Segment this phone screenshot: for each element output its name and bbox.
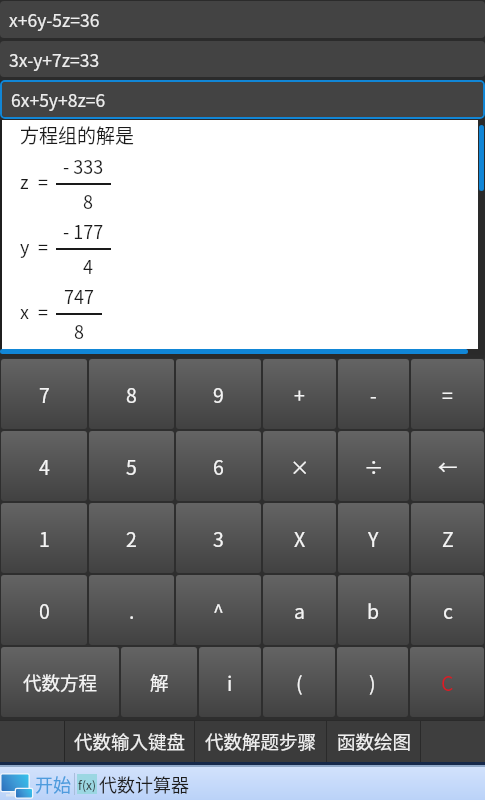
staticText: - 333 xyxy=(38,153,128,179)
button[interactable]: 0 xyxy=(1,575,87,645)
button[interactable]: × xyxy=(263,431,336,501)
button[interactable]: X xyxy=(263,503,336,573)
button[interactable]: ) xyxy=(337,647,408,717)
staticText: 747 xyxy=(34,283,124,309)
staticText: ^ xyxy=(213,596,224,624)
button[interactable]: 代数方程 xyxy=(1,647,119,717)
staticText: C xyxy=(441,668,454,696)
button[interactable]: a xyxy=(263,575,336,645)
staticText: + xyxy=(294,380,305,408)
button[interactable]: 3 xyxy=(176,503,261,573)
staticText: x+6y-5z=36 xyxy=(9,7,100,32)
button[interactable]: + xyxy=(263,359,336,429)
button[interactable]: 1 xyxy=(1,503,87,573)
staticText: ) xyxy=(369,668,376,696)
staticText: Z xyxy=(442,524,454,552)
button[interactable]: 6x+5y+8z=6 xyxy=(2,82,483,117)
staticText: X xyxy=(294,524,306,552)
button[interactable]: C xyxy=(410,647,484,717)
staticText: 2 xyxy=(126,524,137,552)
staticText: 9 xyxy=(213,380,224,408)
staticText: 8 xyxy=(43,188,133,214)
staticText: 代数计算器 xyxy=(99,771,189,797)
button[interactable]: ÷ xyxy=(338,431,409,501)
staticText: ÷ xyxy=(364,452,384,480)
other: Start xyxy=(0,769,34,799)
button[interactable]: i xyxy=(199,647,261,717)
staticText: 开始 xyxy=(35,771,71,797)
staticText: 函数绘图 xyxy=(337,728,412,755)
staticText: 6 xyxy=(213,452,224,480)
button[interactable]: 代数解题步骤 xyxy=(195,720,327,762)
staticText: 代数解题步骤 xyxy=(205,728,317,755)
staticText: 6x+5y+8z=6 xyxy=(11,87,106,112)
staticText: = xyxy=(38,168,48,194)
button[interactable]: 9 xyxy=(176,359,261,429)
button[interactable]: ^ xyxy=(176,575,261,645)
staticText: 解 xyxy=(150,669,169,696)
button[interactable]: 8 xyxy=(89,359,174,429)
staticText: = xyxy=(442,380,453,408)
button[interactable]: ( xyxy=(263,647,335,717)
staticText: 5 xyxy=(126,452,137,480)
button[interactable]: ← xyxy=(411,431,484,501)
staticText: 1 xyxy=(39,524,50,552)
staticText: 方程组的解是 xyxy=(20,121,135,149)
staticText: i xyxy=(227,668,233,696)
staticText: 4 xyxy=(39,452,50,480)
staticText: y xyxy=(20,233,30,259)
staticText: × xyxy=(290,452,310,480)
button[interactable]: 7 xyxy=(1,359,87,429)
staticText: ← xyxy=(438,452,458,480)
button[interactable]: 代数输入键盘 xyxy=(65,720,195,762)
staticText: - 177 xyxy=(38,218,128,244)
staticText: a xyxy=(294,596,305,624)
button[interactable]: 3x-y+7z=33 xyxy=(0,41,485,77)
staticText: = xyxy=(38,298,48,324)
button[interactable]: - xyxy=(338,359,409,429)
staticText: - xyxy=(370,380,377,408)
staticText: b xyxy=(367,596,380,624)
staticText: 代数方程 xyxy=(23,669,98,696)
staticText: 8 xyxy=(126,380,137,408)
button[interactable]: Z xyxy=(411,503,484,573)
staticText: ( xyxy=(296,668,303,696)
staticText: c xyxy=(443,596,453,624)
staticText: 4 xyxy=(43,253,133,279)
staticText: 3x-y+7z=33 xyxy=(9,47,100,72)
button[interactable]: c xyxy=(411,575,484,645)
staticText: Y xyxy=(368,524,379,552)
staticText: x xyxy=(20,298,29,324)
button[interactable]: 2 xyxy=(89,503,174,573)
staticText: 0 xyxy=(39,596,50,624)
staticText: . xyxy=(129,596,135,624)
staticText: 代数输入键盘 xyxy=(74,728,186,755)
staticText: z xyxy=(20,168,29,194)
button[interactable]: . xyxy=(89,575,174,645)
staticText: = xyxy=(38,233,48,259)
staticText: 7 xyxy=(39,380,50,408)
button[interactable]: b xyxy=(338,575,409,645)
button[interactable]: Y xyxy=(338,503,409,573)
staticText: 8 xyxy=(34,318,124,344)
button[interactable]: 4 xyxy=(1,431,87,501)
button[interactable]: 函数绘图 xyxy=(327,720,421,762)
staticText: 3 xyxy=(213,524,224,552)
button[interactable]: 5 xyxy=(89,431,174,501)
button[interactable]: 解 xyxy=(121,647,197,717)
button[interactable]: = xyxy=(411,359,484,429)
staticText: f(x) xyxy=(78,776,96,793)
button[interactable]: 6 xyxy=(176,431,261,501)
button[interactable]: x+6y-5z=36 xyxy=(0,1,485,38)
